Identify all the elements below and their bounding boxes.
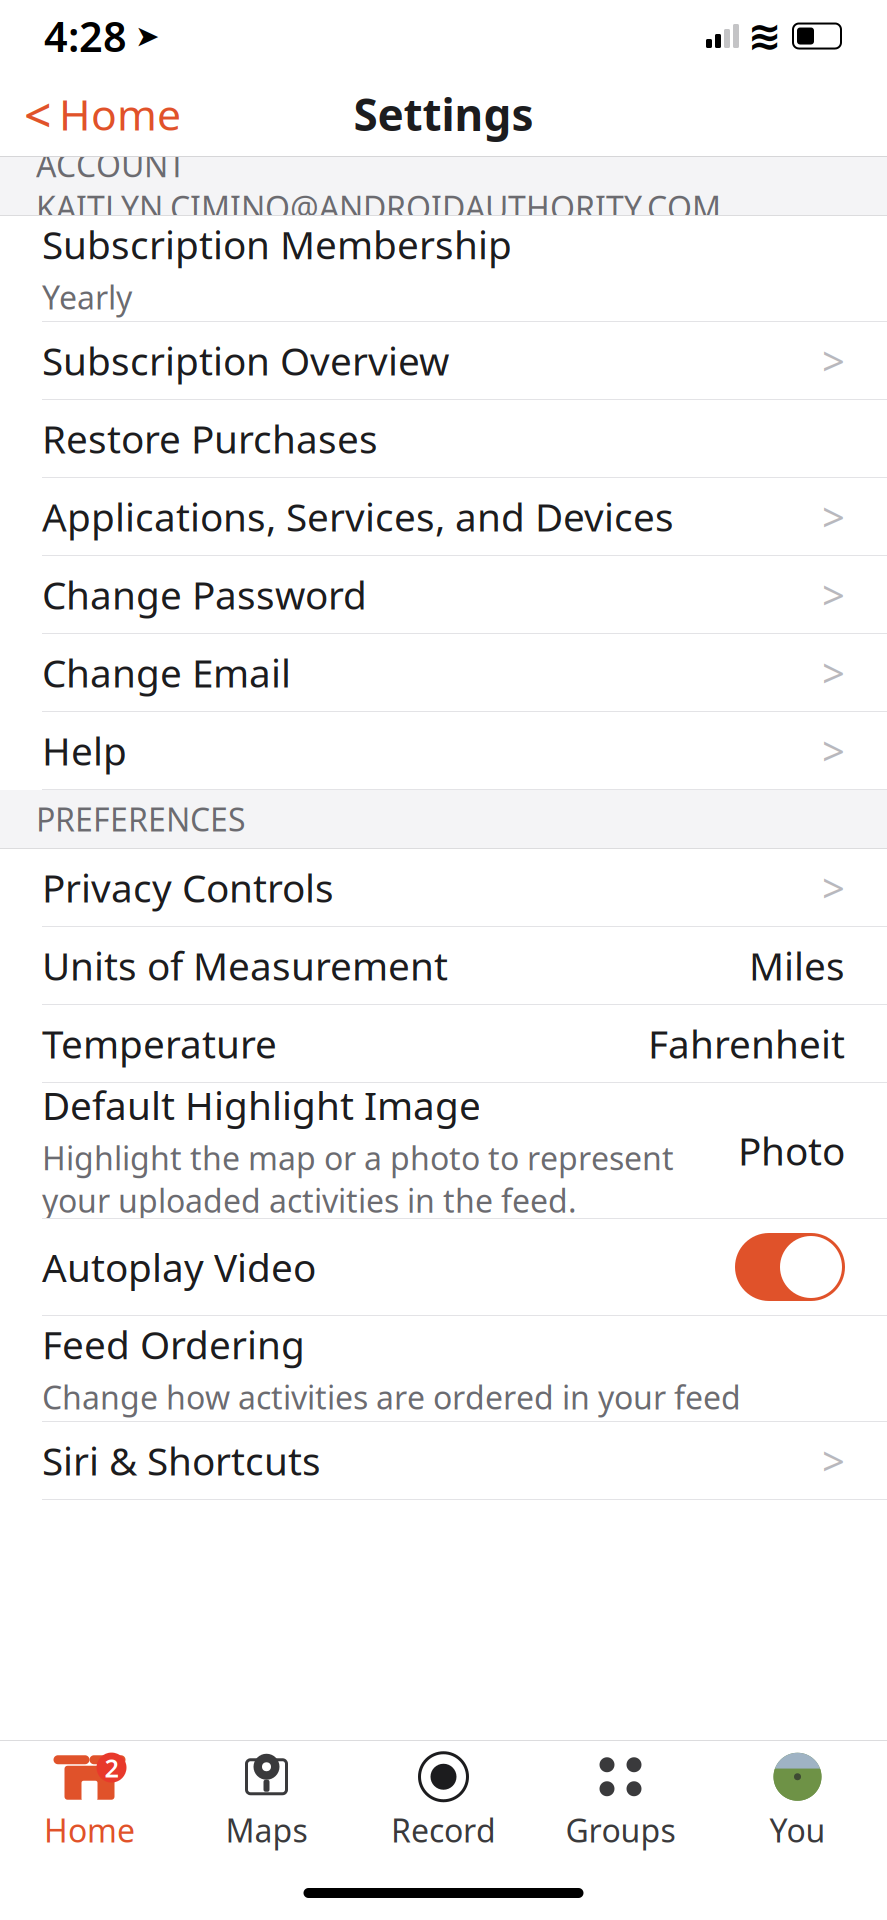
button[interactable]: Subscription Membership bbox=[0, 216, 887, 322]
staticText: > bbox=[822, 646, 845, 699]
button[interactable]: Units of Measurement bbox=[0, 927, 887, 1005]
staticText: Home bbox=[59, 86, 181, 142]
button[interactable]: Change Password bbox=[0, 556, 887, 634]
button[interactable]: < bbox=[0, 74, 205, 154]
staticText: > bbox=[822, 490, 845, 543]
button[interactable]: You bbox=[709, 1741, 886, 1861]
staticText: Autoplay Video bbox=[42, 1241, 316, 1293]
staticText: ACCOUNT KAITLYN.CIMINO@ANDROIDAUTHORITY.… bbox=[36, 143, 721, 228]
staticText: Miles bbox=[749, 940, 845, 991]
staticText: Yearly bbox=[42, 276, 132, 318]
staticText: Subscription Membership bbox=[42, 219, 512, 270]
staticText: > bbox=[822, 861, 845, 914]
button[interactable]: 2 bbox=[1, 1741, 178, 1861]
staticText: 4:28 bbox=[44, 9, 127, 63]
staticText: > bbox=[822, 1434, 845, 1487]
staticText: ≋ bbox=[748, 13, 782, 59]
staticText: > bbox=[822, 568, 845, 621]
staticText: < bbox=[24, 82, 51, 146]
staticText: Applications, Services, and Devices bbox=[42, 491, 674, 542]
staticText: Fahrenheit bbox=[648, 1018, 845, 1069]
staticText: Change how activities are ordered in you… bbox=[42, 1376, 741, 1418]
staticText: You bbox=[769, 1809, 825, 1851]
button[interactable]: Groups bbox=[532, 1741, 709, 1861]
staticText: Units of Measurement bbox=[42, 940, 448, 991]
staticText: Restore Purchases bbox=[42, 413, 378, 464]
staticText: Temperature bbox=[42, 1018, 277, 1069]
staticText: Subscription Overview bbox=[42, 335, 449, 386]
staticText: ➤ bbox=[135, 19, 160, 53]
staticText: 2 bbox=[104, 1751, 118, 1784]
staticText: Highlight the map or a photo to represen… bbox=[42, 1137, 674, 1222]
button[interactable]: Change Email bbox=[0, 634, 887, 712]
staticText: Help bbox=[42, 725, 127, 776]
button[interactable]: Privacy Controls bbox=[0, 849, 887, 927]
button[interactable]: Autoplay Video bbox=[0, 1219, 887, 1316]
button[interactable]: Maps bbox=[178, 1741, 355, 1861]
button[interactable]: Restore Purchases bbox=[0, 400, 887, 478]
staticText: Change Password bbox=[42, 569, 367, 620]
staticText: Privacy Controls bbox=[42, 862, 334, 913]
staticText: Change Email bbox=[42, 647, 291, 698]
button[interactable]: Default Highlight Image bbox=[0, 1083, 887, 1219]
button[interactable]: Subscription Overview bbox=[0, 322, 887, 400]
button[interactable]: Feed Ordering bbox=[0, 1316, 887, 1422]
staticText: Siri & Shortcuts bbox=[42, 1435, 321, 1486]
staticText: Maps bbox=[225, 1809, 307, 1851]
staticText: Feed Ordering bbox=[42, 1319, 305, 1370]
button[interactable]: Siri & Shortcuts bbox=[0, 1422, 887, 1500]
button[interactable]: Temperature bbox=[0, 1005, 887, 1083]
staticText: Record bbox=[391, 1809, 496, 1851]
staticText: Groups bbox=[565, 1809, 675, 1851]
button[interactable]: Help bbox=[0, 712, 887, 790]
staticText: Settings bbox=[353, 85, 533, 143]
staticText: > bbox=[822, 334, 845, 387]
staticText: > bbox=[822, 724, 845, 777]
staticText: Default Highlight Image bbox=[42, 1079, 481, 1131]
staticText: PREFERENCES bbox=[36, 798, 246, 840]
button[interactable]: Applications, Services, and Devices bbox=[0, 478, 887, 556]
staticText: Photo bbox=[738, 1125, 845, 1176]
button[interactable]: Record bbox=[355, 1741, 532, 1861]
staticText: Home bbox=[44, 1809, 135, 1851]
